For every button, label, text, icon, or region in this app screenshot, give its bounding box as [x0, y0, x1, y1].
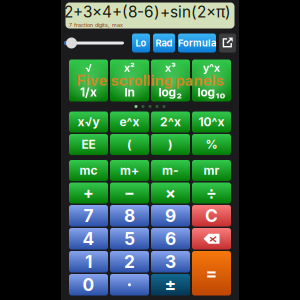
button[interactable]: 7 [69, 205, 108, 226]
staticText: 2 [124, 251, 135, 272]
staticText: e^x [119, 115, 139, 129]
button[interactable]: 4 [69, 228, 108, 249]
staticText: 1 [85, 251, 92, 272]
button[interactable]: − [110, 182, 149, 203]
staticText: 4 [82, 228, 94, 249]
staticText: x³ [165, 61, 176, 74]
staticText: 2^x [160, 115, 181, 129]
staticText: % [205, 137, 217, 152]
button[interactable]: y^x [192, 59, 231, 101]
button[interactable]: Formula [178, 33, 216, 52]
button[interactable]: ± [151, 274, 190, 295]
staticText: Rad [155, 37, 172, 49]
button[interactable]: 5 [110, 228, 149, 249]
staticText: x² [124, 61, 135, 74]
staticText: Formula [178, 37, 216, 49]
button[interactable]: EE [69, 134, 108, 155]
button[interactable]: 0 [69, 274, 108, 295]
staticText: 9 [165, 205, 176, 226]
staticText: EE [81, 137, 95, 152]
staticText: 2+3×4+(8-6)+sin(2×π) [64, 3, 231, 21]
button[interactable]: 2 [110, 251, 149, 272]
button[interactable]: 1 [69, 251, 108, 272]
button[interactable]: ( [110, 134, 149, 155]
staticText: ln [124, 85, 134, 99]
staticText: log₂ [158, 85, 182, 99]
staticText: y^x [203, 61, 220, 74]
button[interactable]: × [151, 182, 190, 203]
staticText: 7 fraction digits, max [69, 22, 123, 28]
button[interactable]: Rad [153, 33, 175, 52]
staticText: mr [203, 163, 219, 178]
button[interactable]: x² [110, 59, 149, 101]
button[interactable]: 6 [151, 228, 190, 249]
staticText: log₁₀ [197, 85, 225, 99]
staticText: 5 [124, 228, 135, 249]
staticText: m- [162, 163, 179, 178]
button[interactable]: mc [69, 160, 108, 181]
staticText: ± [164, 274, 176, 295]
button[interactable]: = [192, 251, 231, 295]
staticText: mc [79, 163, 97, 178]
button[interactable]: Backspace [192, 228, 231, 249]
button[interactable]: 8 [110, 205, 149, 226]
button[interactable]: x√y [69, 111, 108, 132]
button[interactable]: e^x [110, 111, 149, 132]
staticText: ÷ [206, 183, 217, 203]
button[interactable] [110, 274, 149, 295]
staticText: √ [85, 61, 92, 74]
staticText: − [124, 183, 135, 203]
button[interactable]: mr [192, 160, 231, 181]
button[interactable]: x³ [151, 59, 190, 101]
staticText: × [165, 183, 176, 203]
button[interactable]: ÷ [192, 182, 231, 203]
staticText: Lo [135, 37, 146, 49]
staticText: ( [127, 137, 132, 152]
staticText: 7 [83, 205, 93, 226]
button[interactable]: m+ [110, 160, 149, 181]
staticText: 0 [82, 274, 94, 295]
button[interactable]: Value slider [64, 33, 124, 52]
staticText: 10^x [198, 115, 224, 129]
button[interactable]: ) [151, 134, 190, 155]
staticText: x√y [77, 115, 99, 129]
staticText: m+ [120, 163, 139, 178]
button[interactable]: Lo [132, 33, 150, 52]
staticText: Five scrolling panels [76, 72, 223, 89]
staticText: 8 [124, 205, 135, 226]
button[interactable]: m- [151, 160, 190, 181]
staticText: 1/x [80, 85, 97, 99]
button[interactable]: % [192, 134, 231, 155]
staticText: C [205, 205, 218, 226]
button[interactable]: 10^x [192, 111, 231, 132]
button[interactable]: 9 [151, 205, 190, 226]
staticText: = [205, 263, 217, 284]
button[interactable]: Share [219, 33, 236, 52]
staticText: + [83, 183, 94, 203]
staticText: 3 [165, 251, 176, 272]
staticText: ) [168, 137, 173, 152]
staticText: 6 [165, 228, 176, 249]
button[interactable]: C [192, 205, 231, 226]
button[interactable]: √ [69, 59, 108, 101]
button[interactable]: + [69, 182, 108, 203]
button[interactable]: 2^x [151, 111, 190, 132]
button[interactable]: 3 [151, 251, 190, 272]
